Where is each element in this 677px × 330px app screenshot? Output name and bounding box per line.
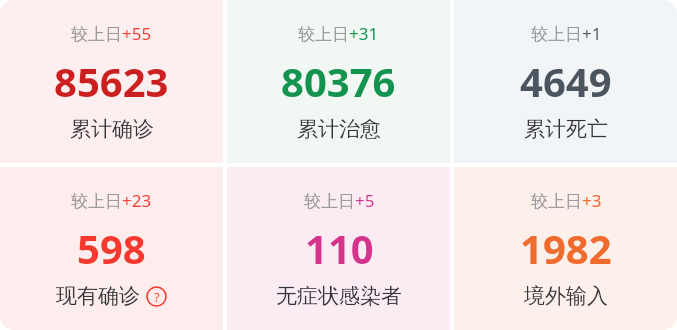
staticText: 85623 <box>54 54 169 108</box>
staticText: 598 <box>77 221 146 275</box>
staticText: ? <box>154 288 160 306</box>
button[interactable]: 较上日+3 <box>454 167 677 330</box>
staticText: 较上日+23 <box>71 189 152 212</box>
staticText: 较上日+3 <box>531 189 602 212</box>
staticText: 较上日+55 <box>71 22 152 45</box>
staticText: 110 <box>305 221 374 275</box>
button[interactable]: 较上日+23 <box>0 167 223 330</box>
staticText: 较上日+5 <box>304 189 375 212</box>
staticText: 累计治愈 <box>297 116 381 142</box>
staticText: 累计死亡 <box>524 116 608 142</box>
staticText: 较上日+31 <box>298 22 379 45</box>
staticText: 累计确诊 <box>70 116 154 142</box>
staticText: 境外输入 <box>524 283 608 309</box>
button[interactable]: 较上日+5 <box>227 167 450 330</box>
button[interactable]: 说明 <box>146 286 167 307</box>
staticText: 4649 <box>520 54 612 108</box>
button[interactable]: 较上日+31 <box>227 0 450 163</box>
staticText: 较上日+1 <box>531 22 602 45</box>
staticText: 1982 <box>520 221 612 275</box>
button[interactable]: 较上日+55 <box>0 0 223 163</box>
staticText: 现有确诊 <box>56 283 140 309</box>
button[interactable]: 较上日+1 <box>454 0 677 163</box>
staticText: 80376 <box>281 54 396 108</box>
staticText: 无症状感染者 <box>276 283 402 309</box>
